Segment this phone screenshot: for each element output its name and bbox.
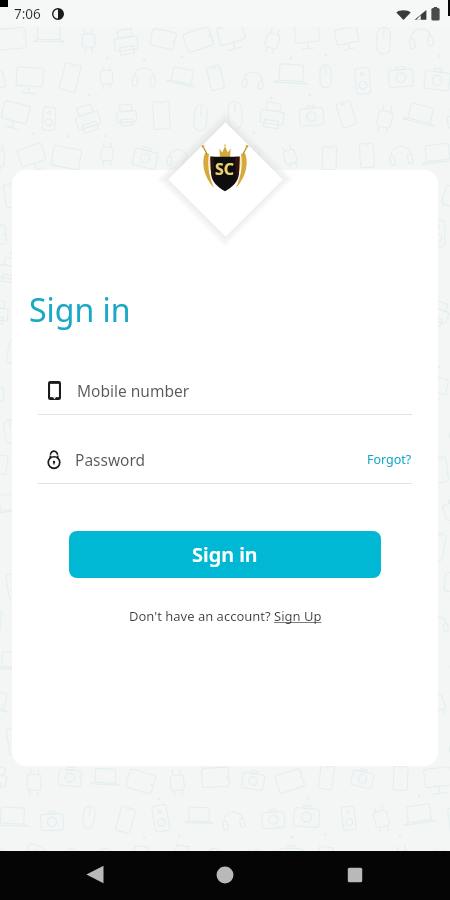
button[interactable]: Forgot? bbox=[367, 451, 412, 468]
staticText: Mobile number bbox=[77, 380, 190, 401]
staticText: Don't have an account? Sign Up bbox=[129, 607, 322, 625]
staticText: Sign in bbox=[192, 541, 258, 568]
staticText: SC bbox=[215, 158, 235, 180]
button[interactable]: Home bbox=[160, 851, 290, 900]
button[interactable]: Back bbox=[0, 851, 160, 900]
button[interactable]: Password bbox=[46, 441, 412, 477]
staticText: Sign in bbox=[29, 288, 131, 332]
button[interactable]: Mobile number bbox=[48, 372, 412, 408]
button[interactable]: Don't have an account? Sign Up bbox=[129, 607, 322, 625]
button[interactable]: Sign in bbox=[69, 531, 381, 578]
button[interactable]: Recent apps bbox=[290, 851, 450, 900]
staticText: Password bbox=[75, 449, 146, 470]
staticText: Forgot? bbox=[367, 451, 412, 468]
staticText: 7:06 bbox=[14, 5, 41, 23]
